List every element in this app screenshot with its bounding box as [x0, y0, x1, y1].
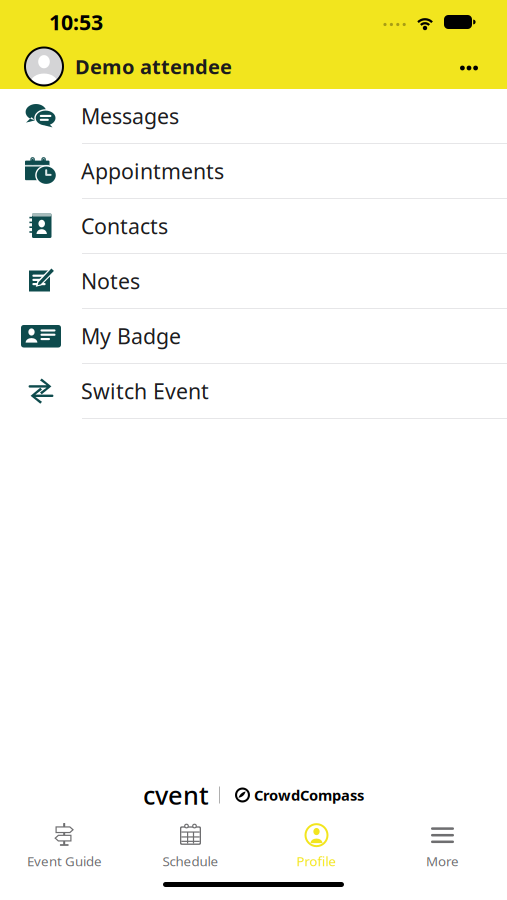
staticText: More	[426, 852, 459, 870]
button[interactable]: Contacts	[0, 199, 507, 254]
staticText: Schedule	[162, 852, 218, 870]
button[interactable]: Event Guide	[1, 822, 127, 870]
button[interactable]: Messages	[0, 89, 507, 144]
staticText: Notes	[81, 267, 140, 295]
button[interactable]: Demo attendee	[25, 44, 232, 88]
staticText: Contacts	[81, 212, 168, 240]
staticText: Messages	[81, 102, 179, 130]
button[interactable]: Schedule	[127, 822, 253, 870]
staticText: CrowdCompass	[254, 785, 364, 805]
staticText: Switch Event	[81, 377, 209, 405]
staticText: My Badge	[81, 322, 181, 350]
button[interactable]: Switch Event	[0, 364, 507, 419]
button[interactable]: More	[379, 822, 505, 870]
staticText: Demo attendee	[75, 53, 232, 80]
button[interactable]: Appointments	[0, 144, 507, 199]
staticText: 10:53	[49, 8, 103, 36]
button[interactable]: Notes	[0, 254, 507, 309]
button[interactable]: My Badge	[0, 309, 507, 364]
button[interactable]: Profile	[253, 822, 379, 870]
staticText: Profile	[296, 852, 336, 870]
button[interactable]: More options	[452, 47, 486, 85]
staticText: Appointments	[81, 157, 224, 185]
staticText: cvent	[143, 778, 209, 812]
staticText: Event Guide	[27, 852, 102, 870]
